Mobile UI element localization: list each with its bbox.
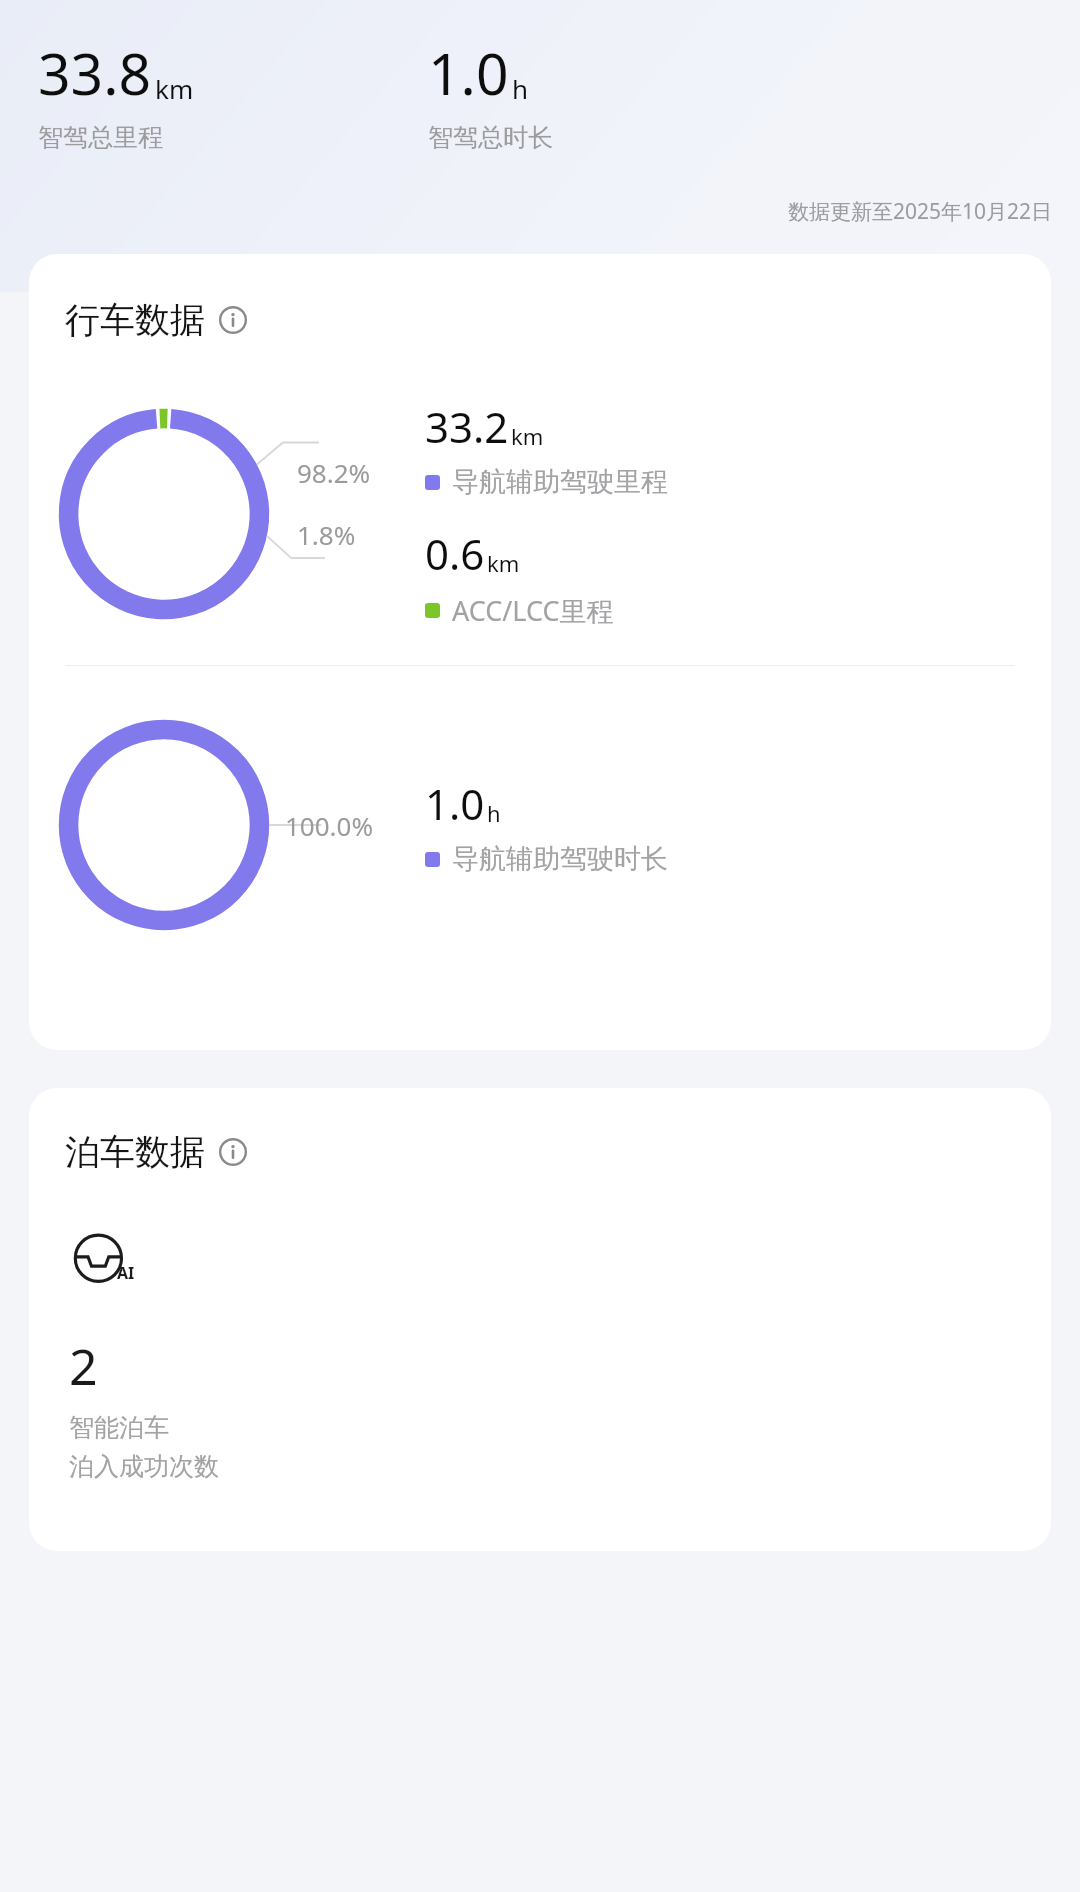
- staticText: 100.0%: [285, 808, 374, 843]
- staticText: 1.8%: [297, 517, 356, 552]
- staticText: ACC/LCC里程: [452, 592, 614, 629]
- staticText: 智能泊车: [69, 1412, 169, 1443]
- staticText: 智驾总里程: [38, 122, 163, 153]
- staticText: km: [487, 548, 520, 578]
- staticText: 数据更新至2025年10月22日: [0, 197, 1052, 226]
- staticText: 98.2%: [297, 455, 371, 490]
- staticText: 导航辅助驾驶里程: [452, 465, 668, 499]
- staticText: km: [155, 71, 194, 106]
- staticText: 泊入成功次数: [69, 1451, 219, 1482]
- staticText: 泊车数据: [65, 1130, 205, 1174]
- staticText: 1.0: [428, 34, 509, 112]
- staticText: 33.8: [38, 34, 152, 112]
- staticText: 行车数据: [65, 298, 205, 342]
- staticText: km: [511, 421, 544, 451]
- staticText: 33.2: [425, 398, 509, 455]
- staticText: 0.6: [425, 525, 485, 582]
- staticText: h: [512, 71, 529, 106]
- button[interactable]: 泊车数据: [65, 1126, 259, 1178]
- staticText: h: [487, 798, 501, 828]
- button[interactable]: Smart parking: [69, 1226, 139, 1296]
- staticText: 2: [69, 1332, 98, 1400]
- other: Info: [219, 306, 247, 334]
- staticText: 智驾总时长: [428, 122, 553, 153]
- staticText: 1.0: [425, 775, 485, 832]
- other: Info: [219, 1138, 247, 1166]
- button[interactable]: 行车数据: [65, 294, 259, 346]
- staticText: AI: [117, 1262, 135, 1284]
- staticText: 导航辅助驾驶时长: [452, 842, 668, 876]
